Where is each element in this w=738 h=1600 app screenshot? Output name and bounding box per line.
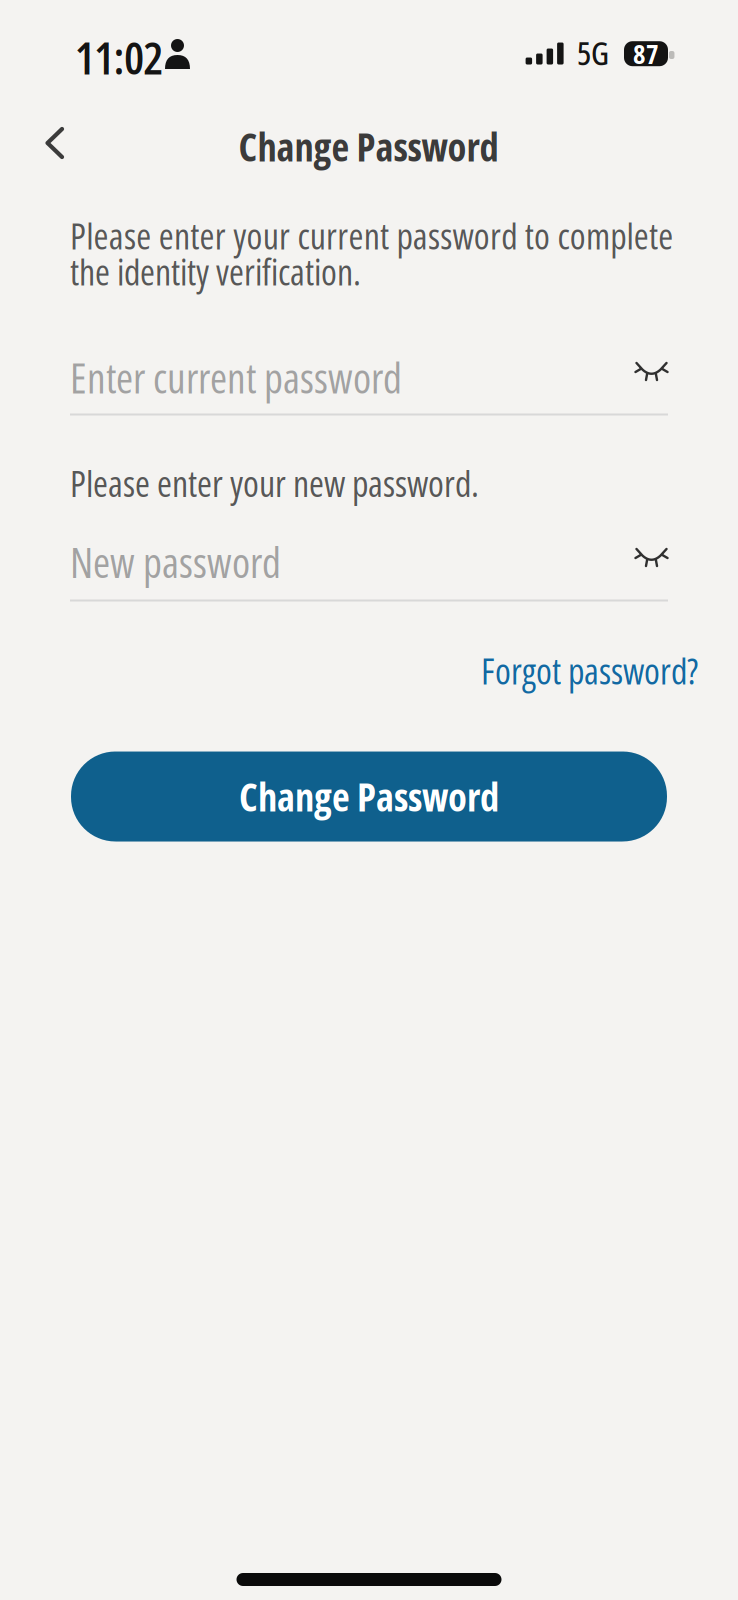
button[interactable]	[44, 126, 65, 159]
staticText: Please enter your new password.	[70, 458, 479, 507]
staticText: 11:02	[75, 26, 163, 88]
button[interactable]: Enter current password	[70, 349, 402, 406]
button[interactable]: Forgot password?	[481, 646, 698, 695]
button[interactable]	[635, 361, 668, 381]
button[interactable]	[635, 547, 668, 567]
staticText: the identity verification.	[70, 247, 361, 296]
button[interactable]: Change Password	[71, 751, 667, 841]
staticText: Forgot password?	[481, 646, 698, 695]
staticText: Enter current password	[70, 349, 402, 406]
staticText: Change Password	[239, 770, 499, 823]
staticText: 5G	[577, 30, 609, 75]
staticText: 87	[633, 35, 659, 72]
staticText: Please enter your current password to co…	[70, 211, 673, 260]
staticText: New password	[70, 534, 281, 590]
button[interactable]: New password	[70, 534, 281, 590]
staticText: Change Password	[238, 120, 498, 173]
